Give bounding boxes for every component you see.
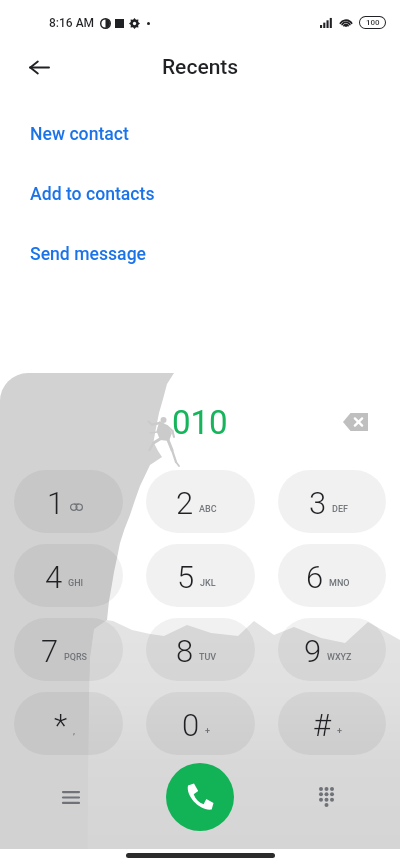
staticText: 2 xyxy=(176,485,194,521)
button[interactable]: * xyxy=(14,692,123,755)
staticText: * xyxy=(54,707,68,743)
button[interactable]: 8 xyxy=(146,618,255,681)
button[interactable]: 1 xyxy=(14,470,123,533)
button[interactable]: Call xyxy=(166,763,234,831)
staticText: WXYZ xyxy=(327,652,352,663)
button[interactable]: 6 xyxy=(278,544,386,607)
button[interactable]: Back xyxy=(15,45,63,89)
staticText: Recents xyxy=(162,55,239,80)
button[interactable]: 4 xyxy=(14,544,123,607)
staticText: + xyxy=(205,726,211,737)
staticText: DEF xyxy=(332,504,348,515)
button[interactable]: 3 xyxy=(278,470,386,533)
staticText: Add to contacts xyxy=(30,184,155,205)
staticText: 3 xyxy=(309,485,327,521)
staticText: , xyxy=(73,726,75,737)
button[interactable]: Add to contacts xyxy=(0,164,400,224)
staticText: 100 xyxy=(366,18,380,27)
staticText: JKL xyxy=(200,578,216,589)
staticText: 5 xyxy=(177,559,195,595)
button[interactable]: 7 xyxy=(14,618,123,681)
button[interactable]: # xyxy=(278,692,386,755)
button[interactable]: Call log xyxy=(51,777,91,817)
staticText: Send message xyxy=(30,244,147,265)
button[interactable]: 5 xyxy=(146,544,255,607)
button[interactable]: 9 xyxy=(278,618,386,681)
staticText: GHI xyxy=(68,578,84,589)
button[interactable]: New contact xyxy=(0,104,400,164)
staticText: 8:16 AM xyxy=(49,16,95,30)
button[interactable]: 2 xyxy=(146,470,255,533)
staticText: MNO xyxy=(329,578,350,589)
staticText: # xyxy=(313,707,332,743)
button[interactable]: 0 xyxy=(146,692,255,755)
staticText: 7 xyxy=(41,633,59,669)
staticText: 1 xyxy=(47,485,65,521)
staticText: 010 xyxy=(172,403,228,442)
staticText: PQRS xyxy=(64,652,88,663)
button[interactable]: Send message xyxy=(0,224,400,284)
staticText: + xyxy=(337,726,343,737)
staticText: 0 xyxy=(182,707,200,743)
button[interactable]: Backspace xyxy=(334,401,376,443)
staticText: 9 xyxy=(304,633,322,669)
staticText: New contact xyxy=(30,124,129,145)
button[interactable]: Dialpad xyxy=(306,777,346,817)
staticText: ABC xyxy=(199,504,217,515)
staticText: 6 xyxy=(306,559,324,595)
staticText: 4 xyxy=(45,559,63,595)
staticText: 8 xyxy=(176,633,194,669)
staticText: TUV xyxy=(199,652,217,663)
